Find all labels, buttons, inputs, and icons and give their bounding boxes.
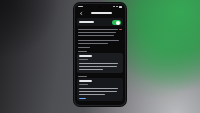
button[interactable]: Back bbox=[78, 10, 84, 16]
button[interactable] bbox=[79, 98, 86, 99]
button[interactable] bbox=[77, 78, 123, 101]
button[interactable] bbox=[77, 53, 123, 73]
button[interactable] bbox=[77, 18, 123, 26]
